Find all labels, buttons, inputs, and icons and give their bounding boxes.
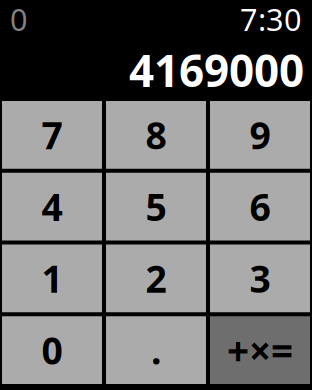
staticText: 2 <box>145 254 166 303</box>
staticText: 3 <box>249 254 270 303</box>
staticText: 6 <box>249 182 270 231</box>
button[interactable]: 6 <box>210 173 310 241</box>
button[interactable]: 7 <box>2 101 102 169</box>
staticText: 7 <box>41 110 62 160</box>
staticText: +×= <box>227 324 293 376</box>
staticText: . <box>151 325 161 375</box>
staticText: 9 <box>249 110 270 160</box>
staticText: 0 <box>10 0 28 39</box>
staticText: 4169000 <box>129 41 304 99</box>
button[interactable]: Decimal point <box>106 316 206 384</box>
staticText: 7:30 <box>240 0 302 39</box>
button[interactable]: 1 <box>2 244 102 312</box>
button[interactable]: 0 <box>2 316 102 384</box>
staticText: 4 <box>41 182 62 231</box>
button[interactable]: 5 <box>106 173 206 241</box>
button[interactable]: 4 <box>2 173 102 241</box>
staticText: 0 <box>41 325 62 375</box>
button[interactable]: 3 <box>210 244 310 312</box>
button[interactable]: 9 <box>210 101 310 169</box>
staticText: 8 <box>145 110 166 160</box>
staticText: 1 <box>41 254 62 303</box>
button[interactable]: 8 <box>106 101 206 169</box>
staticText: 5 <box>145 182 166 231</box>
button[interactable]: 2 <box>106 244 206 312</box>
button[interactable]: Operators <box>210 316 310 384</box>
